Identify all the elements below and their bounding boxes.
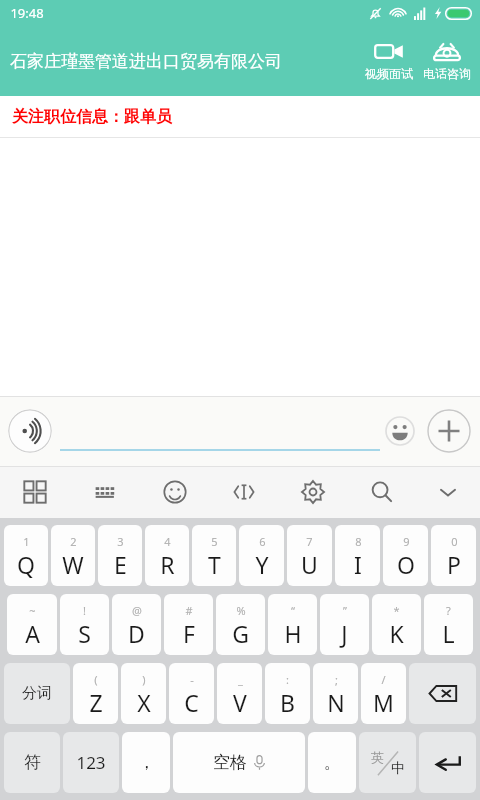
button[interactable]: Settings [278, 466, 347, 518]
button[interactable]: More options [426, 408, 472, 454]
button[interactable]: Backspace [409, 663, 476, 724]
staticText: 19:48 [10, 4, 44, 22]
staticText: ( [94, 672, 98, 687]
button[interactable]: - [169, 663, 214, 724]
staticText: I [354, 549, 362, 580]
staticText: 英 [371, 749, 384, 765]
button[interactable]: Apps [0, 466, 70, 518]
button[interactable]: Hide keyboard [416, 466, 480, 518]
staticText: 6 [259, 534, 266, 549]
staticText: * [393, 603, 400, 618]
button[interactable]: Voice input [8, 409, 52, 453]
button[interactable]: 3 [98, 525, 142, 586]
staticText: U [301, 549, 318, 580]
button[interactable]: ~ [7, 594, 57, 655]
button[interactable]: “ [268, 594, 317, 655]
button[interactable] [60, 396, 380, 466]
button[interactable]: ( [73, 663, 118, 724]
button[interactable]: 4 [145, 525, 189, 586]
button[interactable]: ! [60, 594, 109, 655]
staticText: @ [132, 603, 142, 618]
staticText: V [233, 687, 247, 718]
button[interactable]: ; [313, 663, 358, 724]
button[interactable]: 123 [63, 732, 119, 793]
staticText: B [280, 687, 295, 718]
button[interactable]: ? [424, 594, 473, 655]
button[interactable]: # [164, 594, 213, 655]
button[interactable]: _ [217, 663, 262, 724]
staticText: 中 [391, 760, 405, 778]
staticText: ; [335, 672, 338, 687]
button[interactable]: Keyboard layout [70, 466, 140, 518]
button[interactable]: Enter [419, 732, 476, 793]
staticText: O [397, 549, 415, 580]
staticText: 0 [451, 534, 458, 549]
staticText: % [236, 603, 246, 618]
staticText: 7 [306, 534, 313, 549]
staticText: D [128, 618, 145, 649]
button[interactable]: 9 [383, 525, 428, 586]
button[interactable]: 5 [192, 525, 236, 586]
staticText: N [327, 687, 345, 718]
button[interactable]: Emoji [380, 411, 420, 451]
staticText: F [183, 618, 195, 649]
button[interactable]: Emoji [140, 466, 209, 518]
button[interactable]: ) [121, 663, 166, 724]
staticText: Y [255, 549, 269, 580]
staticText: H [284, 618, 302, 649]
staticText: C [184, 687, 199, 718]
staticText: L [442, 618, 455, 649]
button[interactable]: / [361, 663, 406, 724]
staticText: ~ [29, 603, 36, 618]
staticText: 8 [355, 534, 362, 549]
button[interactable]: ” [320, 594, 369, 655]
button[interactable]: 8 [335, 525, 380, 586]
staticText: 符 [24, 752, 41, 773]
button[interactable]: * [372, 594, 421, 655]
staticText: E [114, 549, 127, 580]
button[interactable]: 符 [4, 732, 60, 793]
button[interactable]: % [216, 594, 265, 655]
staticText: K [389, 618, 404, 649]
button[interactable]: Search [347, 466, 416, 518]
button[interactable]: 6 [239, 525, 284, 586]
staticText: R [160, 549, 175, 580]
staticText: X [137, 687, 151, 718]
staticText: A [25, 618, 40, 649]
staticText: 123 [76, 751, 106, 774]
staticText: 4 [164, 534, 171, 549]
button[interactable]: 2 [51, 525, 95, 586]
staticText: 关注职位信息：跟单员 [12, 107, 172, 127]
staticText: G [232, 618, 249, 649]
button[interactable]: ， [122, 732, 170, 793]
button[interactable]: 分词 [4, 663, 70, 724]
button[interactable]: 电话咨询 [418, 38, 476, 84]
button[interactable]: Text editing [209, 466, 278, 518]
staticText: 。 [324, 752, 341, 773]
staticText: “ [291, 603, 295, 618]
staticText: 5 [211, 534, 218, 549]
staticText: 3 [117, 534, 124, 549]
staticText: 石家庄瑾墨管道进出口贸易有限公司 [10, 51, 282, 72]
staticText: W [62, 549, 84, 580]
staticText: ) [142, 672, 146, 687]
staticText: ” [343, 603, 347, 618]
staticText: - [190, 672, 194, 687]
button[interactable]: 0 [431, 525, 476, 586]
staticText: 电话咨询 [423, 66, 471, 81]
button[interactable]: @ [112, 594, 161, 655]
button[interactable]: 。 [308, 732, 356, 793]
staticText: Q [17, 549, 35, 580]
button[interactable]: Switch input language [359, 732, 416, 793]
staticText: S [78, 618, 91, 649]
button[interactable]: 1 [4, 525, 48, 586]
staticText: 1 [23, 534, 30, 549]
button[interactable]: : [265, 663, 310, 724]
button[interactable]: 空格 [173, 732, 305, 793]
staticText: Z [89, 687, 103, 718]
staticText: 视频面试 [365, 66, 413, 81]
staticText: T [208, 549, 221, 580]
staticText: ! [83, 603, 86, 618]
button[interactable]: 7 [287, 525, 332, 586]
button[interactable]: 视频面试 [360, 38, 418, 84]
